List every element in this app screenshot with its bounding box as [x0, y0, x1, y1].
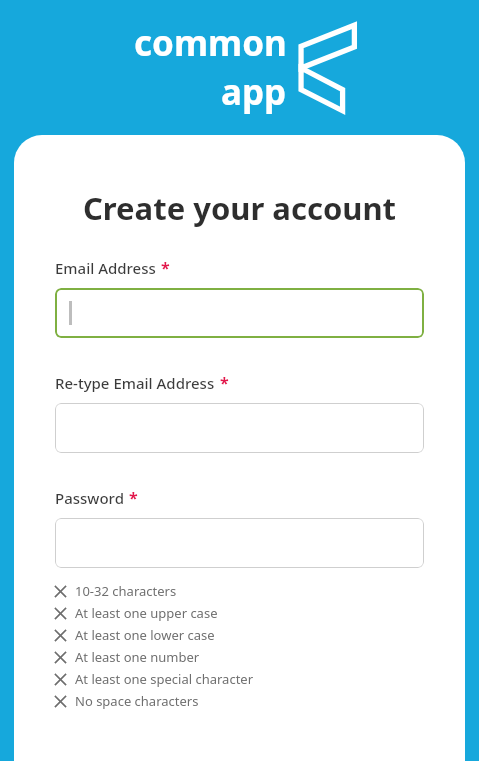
- staticText: Email Address: [55, 258, 156, 278]
- staticText: *: [161, 257, 170, 279]
- staticText: Password: [55, 488, 124, 508]
- staticText: At least one upper case: [75, 604, 218, 622]
- staticText: Create your account: [14, 187, 465, 229]
- staticText: *: [129, 487, 138, 509]
- staticText: At least one lower case: [75, 626, 215, 644]
- staticText: No space characters: [75, 692, 199, 710]
- other: Common App logo: [293, 22, 355, 114]
- button[interactable]: [55, 518, 424, 568]
- staticText: At least one special character: [75, 670, 254, 688]
- button[interactable]: [55, 403, 424, 453]
- staticText: 10-32 characters: [75, 582, 177, 600]
- staticText: At least one number: [75, 648, 200, 666]
- staticText: Re-type Email Address: [55, 373, 215, 393]
- staticText: app: [221, 68, 287, 116]
- button[interactable]: [55, 288, 424, 338]
- staticText: common: [134, 19, 287, 67]
- staticText: *: [220, 372, 229, 394]
